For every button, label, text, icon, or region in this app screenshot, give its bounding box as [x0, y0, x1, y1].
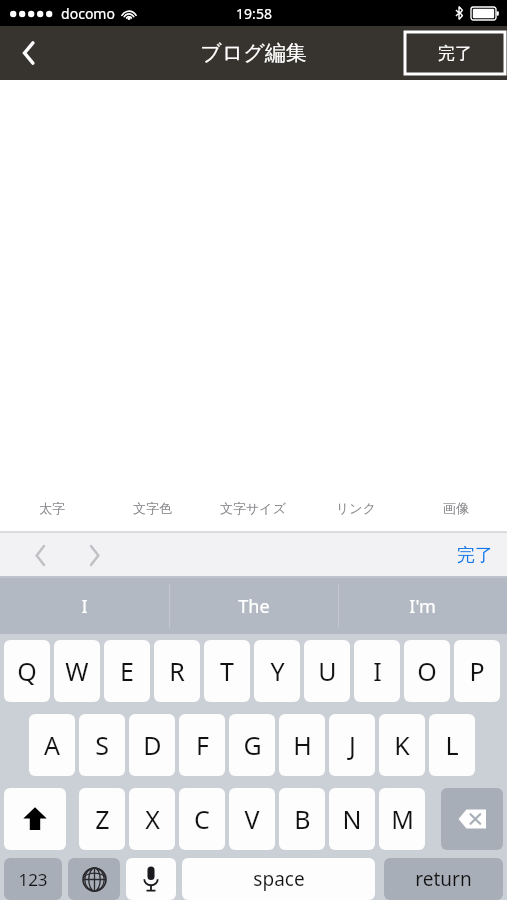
- button[interactable]: P: [454, 640, 500, 702]
- button[interactable]: Previous: [18, 533, 62, 577]
- button[interactable]: return: [384, 858, 503, 900]
- button[interactable]: Dictation: [126, 858, 176, 900]
- staticText: 文字サイズ: [220, 500, 286, 516]
- button[interactable]: N: [329, 788, 375, 850]
- staticText: T: [220, 654, 234, 688]
- staticText: 完了: [438, 43, 472, 64]
- button[interactable]: 文字サイズ: [208, 484, 298, 532]
- staticText: P: [469, 654, 485, 688]
- staticText: S: [95, 728, 109, 762]
- staticText: space: [253, 866, 305, 892]
- staticText: return: [415, 866, 472, 892]
- button[interactable]: Backspace: [441, 788, 503, 850]
- button[interactable]: J: [329, 714, 375, 776]
- button[interactable]: 完了: [457, 532, 493, 578]
- button[interactable]: Z: [79, 788, 125, 850]
- button[interactable]: U: [304, 640, 350, 702]
- button[interactable]: X: [129, 788, 175, 850]
- staticText: E: [120, 654, 134, 688]
- staticText: Y: [270, 654, 285, 688]
- staticText: 19:58: [236, 4, 272, 23]
- staticText: 123: [18, 868, 48, 891]
- staticText: ブログ編集: [200, 40, 307, 66]
- staticText: 文字色: [133, 500, 172, 516]
- staticText: 画像: [443, 500, 469, 516]
- button[interactable]: T: [204, 640, 250, 702]
- staticText: G: [243, 728, 262, 762]
- staticText: J: [349, 728, 356, 762]
- staticText: N: [342, 802, 362, 836]
- button[interactable]: 画像: [411, 484, 501, 532]
- button[interactable]: M: [379, 788, 425, 850]
- button[interactable]: I: [354, 640, 400, 702]
- button[interactable]: I: [0, 578, 169, 634]
- staticText: K: [394, 728, 410, 762]
- staticText: docomo: [61, 4, 115, 23]
- staticText: D: [143, 728, 162, 762]
- staticText: Q: [17, 654, 37, 688]
- staticText: C: [194, 802, 210, 836]
- button[interactable]: L: [429, 714, 475, 776]
- button[interactable]: G: [229, 714, 275, 776]
- staticText: I: [373, 654, 382, 688]
- staticText: H: [293, 728, 312, 762]
- staticText: 太字: [39, 500, 65, 516]
- button[interactable]: I'm: [338, 578, 507, 634]
- staticText: B: [294, 802, 311, 836]
- staticText: X: [145, 802, 160, 836]
- staticText: F: [196, 728, 209, 762]
- staticText: リンク: [336, 500, 376, 516]
- button[interactable]: 文字色: [107, 484, 197, 532]
- button[interactable]: V: [229, 788, 275, 850]
- button[interactable]: space: [182, 858, 375, 900]
- button[interactable]: F: [179, 714, 225, 776]
- staticText: U: [318, 654, 337, 688]
- button[interactable]: H: [279, 714, 325, 776]
- staticText: 完了: [457, 544, 493, 567]
- button[interactable]: 完了: [405, 32, 505, 74]
- button[interactable]: K: [379, 714, 425, 776]
- staticText: R: [169, 654, 185, 688]
- staticText: I'm: [409, 594, 436, 619]
- button[interactable]: Next: [72, 533, 116, 577]
- button[interactable]: A: [29, 714, 75, 776]
- staticText: W: [65, 654, 89, 688]
- button[interactable]: Shift: [4, 788, 66, 850]
- button[interactable]: D: [129, 714, 175, 776]
- staticText: A: [44, 728, 60, 762]
- staticText: I: [81, 594, 88, 619]
- button[interactable]: リンク: [311, 484, 401, 532]
- button[interactable]: O: [404, 640, 450, 702]
- staticText: V: [244, 802, 260, 836]
- staticText: The: [238, 594, 270, 619]
- button[interactable]: B: [279, 788, 325, 850]
- button[interactable]: C: [179, 788, 225, 850]
- staticText: Z: [95, 802, 110, 836]
- button[interactable]: Q: [4, 640, 50, 702]
- staticText: M: [391, 802, 414, 836]
- button[interactable]: W: [54, 640, 100, 702]
- button[interactable]: Change keyboard: [68, 858, 120, 900]
- button[interactable]: The: [169, 578, 338, 634]
- button[interactable]: 123: [4, 858, 62, 900]
- button[interactable]: Y: [254, 640, 300, 702]
- staticText: L: [445, 728, 459, 762]
- button[interactable]: S: [79, 714, 125, 776]
- button[interactable]: R: [154, 640, 200, 702]
- button[interactable]: E: [104, 640, 150, 702]
- button[interactable]: Back: [0, 26, 58, 80]
- staticText: O: [417, 654, 437, 688]
- button[interactable]: 太字: [7, 484, 97, 532]
